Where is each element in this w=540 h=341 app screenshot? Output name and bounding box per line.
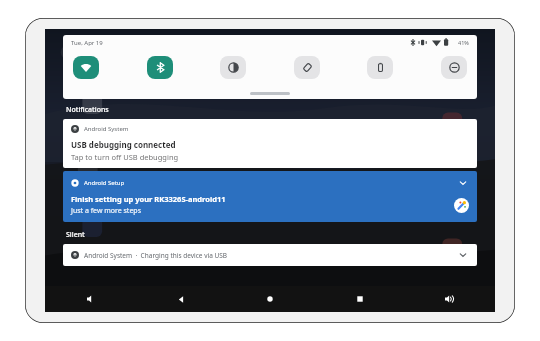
button[interactable]: Volume up xyxy=(437,288,461,310)
staticText: Just a few more steps xyxy=(71,206,142,216)
staticText: Tap to turn off USB debugging xyxy=(71,152,179,162)
button[interactable]: Do Not Disturb xyxy=(441,56,467,79)
button[interactable]: Android System · Charging this device vi… xyxy=(63,244,477,266)
staticText: Android System xyxy=(84,125,129,133)
button[interactable]: Home xyxy=(258,288,282,310)
button[interactable]: Battery Saver xyxy=(367,56,393,79)
button[interactable]: Finish setup xyxy=(454,198,469,213)
button[interactable]: Auto-rotate xyxy=(294,56,320,79)
button[interactable]: Expand xyxy=(457,249,469,261)
staticText: USB debugging connected xyxy=(71,139,176,150)
button[interactable]: Wi-Fi xyxy=(73,56,99,79)
button[interactable]: Bluetooth xyxy=(147,56,173,79)
staticText: Android Setup xyxy=(84,179,125,187)
button[interactable]: Android Setup xyxy=(63,171,477,222)
button[interactable]: Expand xyxy=(457,177,469,189)
button[interactable]: Recent apps xyxy=(348,288,372,310)
button[interactable]: Back xyxy=(169,288,193,310)
staticText: Silent xyxy=(66,230,85,240)
staticText: Finish setting up your RK3326S-android11 xyxy=(71,194,226,204)
staticText: 41% xyxy=(458,39,469,46)
button[interactable]: Volume down xyxy=(79,288,103,310)
staticText: Tue, Apr 19 xyxy=(71,39,103,47)
button[interactable]: Dark theme xyxy=(220,56,246,79)
staticText: Notifications xyxy=(66,105,109,115)
staticText: Android System · Charging this device vi… xyxy=(84,251,228,260)
button[interactable]: Android System xyxy=(63,119,477,168)
